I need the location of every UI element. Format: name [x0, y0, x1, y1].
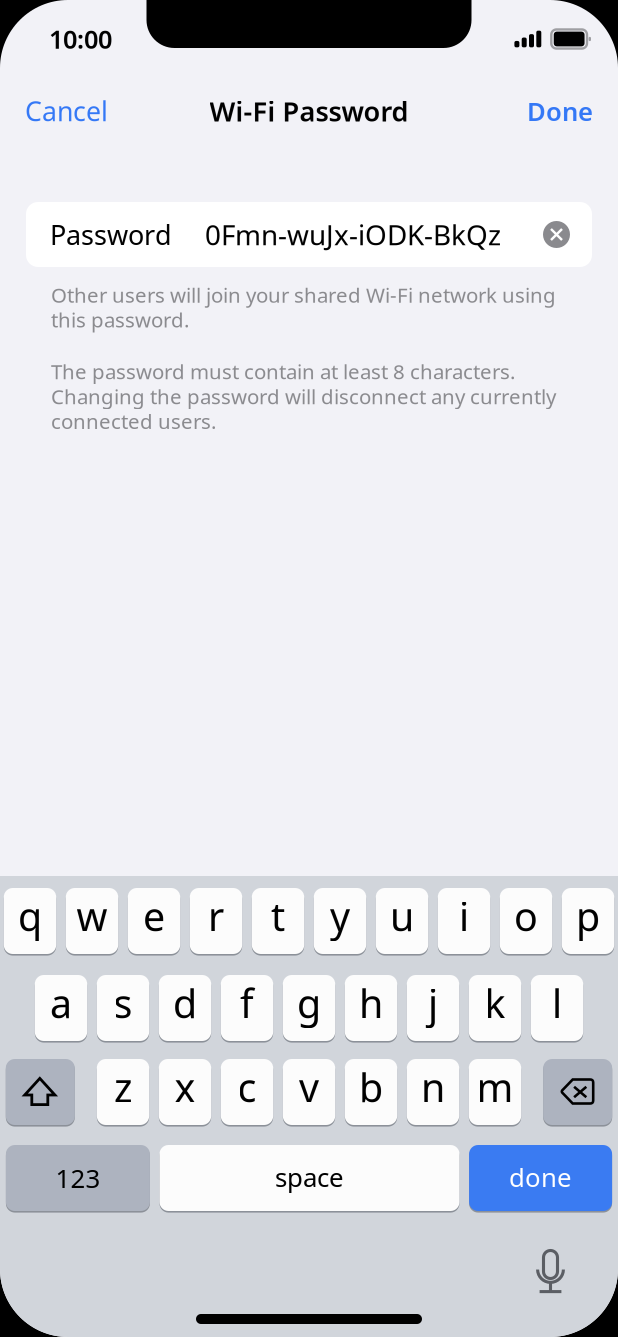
staticText: 10:00 [49, 22, 112, 56]
button[interactable]: g [283, 975, 335, 1041]
button[interactable]: c [221, 1059, 273, 1125]
staticText: v [299, 1060, 319, 1114]
button[interactable]: space [159, 1145, 459, 1211]
staticText: Other users will join your shared Wi-Fi … [51, 281, 556, 334]
button[interactable]: Dictation [536, 1249, 565, 1294]
staticText: q [18, 889, 42, 943]
button[interactable]: 123 [6, 1145, 150, 1211]
button[interactable]: k [469, 975, 521, 1041]
staticText: 123 [55, 1160, 100, 1195]
button[interactable]: l [531, 975, 583, 1041]
button[interactable]: f [221, 975, 273, 1041]
staticText: x [174, 1060, 195, 1114]
button[interactable]: y [314, 888, 366, 954]
staticText: 0Fmn-wuJx-iODK-BkQz [205, 216, 501, 253]
staticText: h [359, 976, 383, 1030]
staticText: Cancel [25, 93, 108, 129]
button[interactable]: Shift [6, 1059, 75, 1125]
staticText: l [552, 976, 562, 1030]
staticText: a [50, 976, 72, 1030]
button[interactable]: n [407, 1059, 459, 1125]
staticText: n [421, 1060, 445, 1114]
staticText: r [208, 889, 224, 943]
button[interactable]: s [97, 975, 149, 1041]
button[interactable]: u [376, 888, 428, 954]
staticText: d [173, 976, 197, 1030]
staticText: b [359, 1060, 383, 1114]
button[interactable]: done [469, 1145, 612, 1211]
staticText: f [240, 976, 254, 1030]
button[interactable]: w [66, 888, 118, 954]
button[interactable]: h [345, 975, 397, 1041]
staticText: The password must contain at least 8 cha… [51, 358, 556, 435]
staticText: o [514, 889, 538, 943]
button[interactable]: m [469, 1059, 521, 1125]
staticText: k [484, 976, 505, 1030]
staticText: Password [50, 216, 172, 253]
button[interactable]: Delete [543, 1059, 612, 1125]
staticText: space [275, 1159, 344, 1194]
button[interactable]: o [500, 888, 552, 954]
staticText: c [237, 1060, 256, 1114]
staticText: t [271, 889, 285, 943]
button[interactable]: v [283, 1059, 335, 1125]
button[interactable]: x [159, 1059, 211, 1125]
staticText: Wi-Fi Password [209, 93, 408, 129]
button[interactable]: p [562, 888, 614, 954]
staticText: y [330, 889, 350, 943]
staticText: g [297, 976, 321, 1030]
button[interactable]: t [252, 888, 304, 954]
staticText: m [476, 1060, 513, 1114]
button[interactable]: j [407, 975, 459, 1041]
staticText: p [576, 889, 600, 943]
button[interactable]: Done [523, 86, 597, 136]
staticText: z [114, 1060, 132, 1114]
staticText: e [143, 889, 165, 943]
button[interactable]: r [190, 888, 242, 954]
button[interactable]: q [4, 888, 56, 954]
staticText: w [76, 889, 107, 943]
staticText: s [113, 976, 132, 1030]
button[interactable]: z [97, 1059, 149, 1125]
button[interactable]: i [438, 888, 490, 954]
button[interactable]: e [128, 888, 180, 954]
staticText: Done [527, 94, 593, 128]
staticText: j [428, 976, 438, 1030]
button[interactable]: Password [26, 202, 592, 267]
staticText: done [509, 1159, 572, 1194]
button[interactable]: d [159, 975, 211, 1041]
button[interactable]: b [345, 1059, 397, 1125]
staticText: u [390, 889, 414, 943]
button[interactable]: a [35, 975, 87, 1041]
button[interactable]: Cancel [21, 85, 112, 137]
staticText: i [459, 889, 469, 943]
